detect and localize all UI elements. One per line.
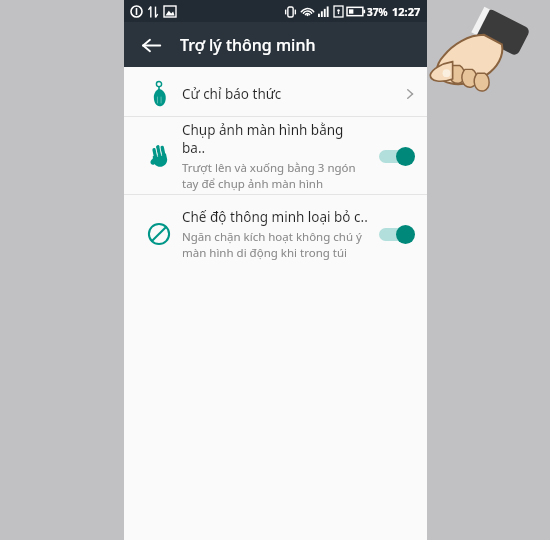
staticText: Cử chỉ báo thức: [182, 85, 403, 103]
button[interactable]: Toggle on: [377, 222, 417, 246]
staticText: Trợ lý thông minh: [180, 34, 316, 56]
staticText: Chụp ảnh màn hình bằng ba..: [182, 121, 369, 157]
staticText: Ngăn chặn kích hoạt không chú ý màn hình…: [182, 229, 362, 260]
button[interactable]: Chụp ảnh màn hình bằng ba..: [124, 117, 427, 194]
staticText: Trượt lên và xuống bằng 3 ngón tay để ch…: [182, 160, 356, 191]
staticText: 37%: [367, 5, 388, 19]
staticText: 12:27: [392, 4, 421, 19]
button[interactable]: Back: [134, 28, 168, 62]
button[interactable]: Toggle on: [377, 144, 417, 168]
button[interactable]: Chế độ thông minh loại bỏ c..: [124, 195, 427, 272]
button[interactable]: Cử chỉ báo thức: [124, 72, 427, 116]
staticText: Chế độ thông minh loại bỏ c..: [182, 208, 368, 226]
